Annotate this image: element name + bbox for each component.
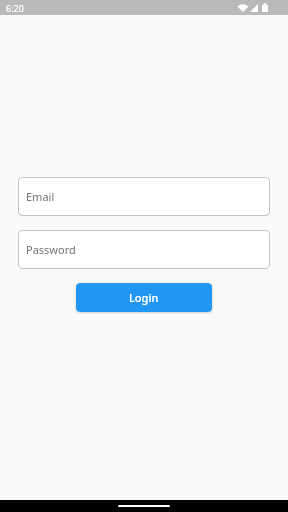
button[interactable]: Login (76, 283, 212, 312)
button[interactable]: Email (18, 177, 270, 216)
staticText: Login (129, 290, 159, 305)
staticText: 6:20 (6, 2, 24, 14)
button[interactable]: Password (18, 230, 270, 269)
staticText: Password (26, 242, 76, 257)
staticText: Email (26, 189, 55, 204)
